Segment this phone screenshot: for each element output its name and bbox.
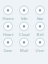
button[interactable]: Star <box>32 6 47 20</box>
button[interactable]: Info <box>16 6 31 20</box>
button[interactable]: Home <box>0 6 15 20</box>
staticText: Cloud <box>19 32 29 37</box>
staticText: Heart <box>3 32 13 37</box>
button[interactable]: Mail <box>16 38 31 52</box>
staticText: Star <box>36 16 43 21</box>
button[interactable]: Gear <box>0 38 15 52</box>
staticText: Bell <box>36 32 43 37</box>
button[interactable]: Bell <box>32 22 47 36</box>
staticText: User <box>35 48 44 53</box>
staticText: Info <box>21 16 27 21</box>
button[interactable]: Cloud <box>16 22 31 36</box>
staticText: Gear <box>3 48 12 53</box>
button[interactable]: Heart <box>0 22 15 36</box>
staticText: Mail <box>20 48 28 53</box>
button[interactable]: User <box>32 38 47 52</box>
staticText: Home <box>2 16 13 21</box>
